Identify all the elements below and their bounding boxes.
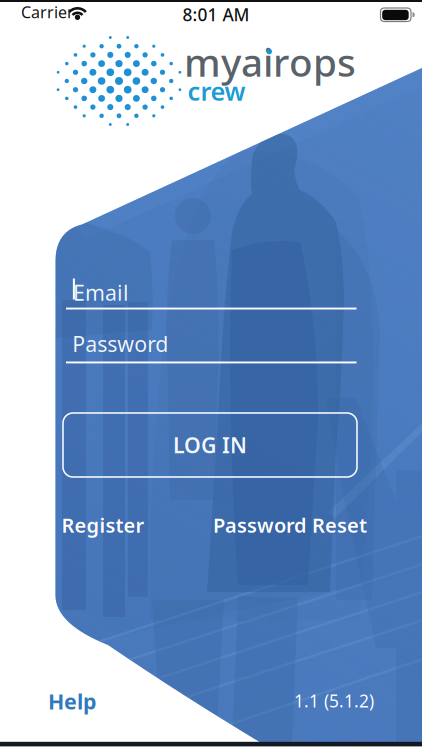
- staticText: LOG IN: [173, 431, 247, 459]
- staticText: Help: [48, 687, 96, 715]
- button[interactable]: Help: [48, 687, 96, 715]
- button[interactable]: LOG IN: [63, 413, 357, 477]
- staticText: crew: [188, 74, 246, 108]
- staticText: myairops: [184, 36, 356, 87]
- button[interactable]: Password: [66, 327, 356, 369]
- button[interactable]: Email: [66, 275, 356, 315]
- button[interactable]: Password Reset: [147, 512, 367, 538]
- staticText: 1.1 (5.1.2): [294, 689, 374, 712]
- staticText: Password Reset: [213, 512, 367, 538]
- button[interactable]: Register: [61, 512, 144, 538]
- staticText: Password: [72, 330, 168, 358]
- staticText: Carrier: [21, 1, 74, 22]
- staticText: Register: [61, 512, 144, 538]
- staticText: Email: [73, 278, 129, 307]
- staticText: 8:01 AM: [182, 3, 249, 26]
